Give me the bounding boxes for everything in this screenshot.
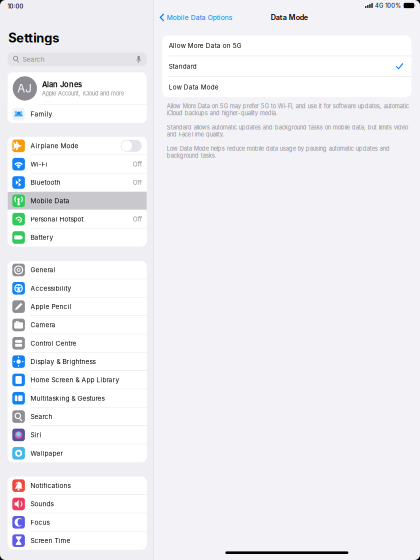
staticText: General [30, 266, 55, 274]
staticText: Search [22, 55, 44, 63]
button[interactable]: Personal Hotspot [8, 210, 147, 228]
staticText: Multitasking & Gestures [30, 394, 104, 402]
button[interactable]: Notifications [8, 477, 147, 494]
button[interactable]: Siri [8, 426, 147, 444]
staticText: Accessibility [30, 284, 71, 292]
staticText: Search [30, 413, 52, 420]
staticText: Off [133, 179, 142, 186]
staticText: Standard allows automatic updates and ba… [167, 124, 408, 138]
staticText: Low Data Mode helps reduce mobile data u… [167, 145, 390, 159]
button[interactable]: Display & Brightness [8, 353, 147, 370]
button[interactable]: Focus [8, 513, 147, 531]
staticText: Battery [30, 233, 53, 241]
staticText: Airplane Mode [30, 142, 78, 150]
button[interactable]: Airplane Mode [8, 137, 147, 155]
staticText: Family [30, 110, 52, 118]
staticText: Siri [30, 431, 41, 439]
staticText: Allow More Data on 5G may prefer 5G to W… [167, 103, 409, 117]
staticText: Wallpaper [30, 449, 62, 457]
button[interactable]: Sounds [8, 495, 147, 513]
staticText: Low Data Mode [169, 83, 219, 91]
staticText: Wi-Fi [30, 160, 47, 168]
staticText: Settings [8, 30, 59, 45]
button[interactable]: Bluetooth [8, 174, 147, 191]
staticText: Display & Brightness [30, 358, 95, 365]
button[interactable]: Battery [8, 229, 147, 246]
staticText: Off [133, 215, 142, 223]
staticText: Notifications [30, 482, 70, 490]
button[interactable]: Mobile Data [8, 192, 147, 210]
button[interactable]: Camera [8, 316, 147, 334]
staticText: Screen Time [30, 537, 70, 545]
button[interactable]: Family [8, 105, 147, 123]
button[interactable]: Standard [162, 56, 411, 76]
button[interactable]: Mobile Data Options [154, 10, 233, 25]
staticText: Alan Jones [42, 80, 82, 89]
staticText: 10:00 [8, 3, 24, 10]
button[interactable]: Accessibility [8, 279, 147, 297]
staticText: Mobile Data [30, 197, 69, 205]
button[interactable]: Wallpaper [8, 444, 147, 462]
button[interactable]: Search [8, 408, 147, 425]
staticText: Sounds [30, 500, 53, 508]
button[interactable]: Wi-Fi [8, 155, 147, 173]
staticText: 4G [375, 2, 383, 9]
staticText: 100% [385, 2, 401, 9]
button[interactable]: Multitasking & Gestures [8, 389, 147, 407]
staticText: Standard [169, 63, 197, 70]
staticText: Apple Pencil [30, 303, 71, 311]
staticText: Focus [30, 518, 49, 526]
staticText: Mobile Data Options [167, 13, 233, 22]
staticText: Data Mode [271, 13, 308, 22]
button[interactable]: Control Centre [8, 334, 147, 352]
staticText: Apple Account, iCloud and more [42, 90, 124, 97]
button[interactable]: Apple Pencil [8, 298, 147, 315]
staticText: Personal Hotspot [30, 215, 83, 223]
staticText: Control Centre [30, 339, 76, 347]
staticText: Home Screen & App Library [30, 376, 119, 384]
staticText: Bluetooth [30, 178, 60, 186]
button[interactable]: Low Data Mode [162, 77, 411, 97]
staticText: Camera [30, 321, 55, 329]
button[interactable]: AJ [8, 72, 147, 105]
button[interactable]: Screen Time [8, 532, 147, 549]
button[interactable]: General [8, 261, 147, 279]
button[interactable]: Home Screen & App Library [8, 371, 147, 389]
staticText: Off [133, 160, 142, 168]
staticText: Allow More Data on 5G [169, 42, 242, 49]
button[interactable]: Search [0, 52, 153, 66]
staticText: AJ [17, 81, 32, 95]
button[interactable]: Allow More Data on 5G [162, 35, 411, 56]
